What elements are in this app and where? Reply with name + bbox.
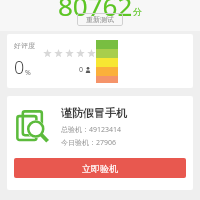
button[interactable]: 好评度	[7, 34, 193, 88]
staticText: 0	[14, 55, 25, 80]
button[interactable]: 验机图标	[7, 96, 193, 158]
staticText: 立即验机	[82, 163, 118, 174]
button[interactable]: 重新测试	[77, 13, 123, 26]
staticText: 分	[133, 6, 142, 17]
staticText: 谨防假冒手机	[61, 106, 127, 120]
staticText: %	[25, 68, 31, 78]
button[interactable]: 立即验机	[14, 158, 186, 178]
staticText: 重新测试	[86, 15, 114, 24]
staticText: 0	[79, 65, 84, 75]
staticText: 今日验机：27906	[61, 138, 117, 148]
staticText: 好评度	[14, 41, 35, 50]
staticText: 80762	[58, 0, 133, 19]
staticText: 总验机：49123414	[61, 125, 122, 135]
other: 验机图标	[16, 110, 50, 144]
